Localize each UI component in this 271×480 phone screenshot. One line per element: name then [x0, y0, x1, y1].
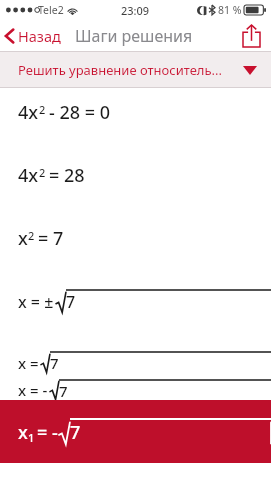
staticText: x = - [18, 380, 48, 400]
staticText: x = [18, 353, 39, 373]
staticText: 7 [59, 381, 68, 400]
staticText: 7 [70, 420, 81, 445]
staticText: x [18, 226, 28, 251]
staticText: = 7 [38, 226, 64, 251]
staticText: Решить уравнение относитель... [18, 61, 222, 79]
staticText: 4x [18, 100, 39, 125]
staticText: Назад [18, 26, 61, 46]
staticText: Шаги решения [75, 25, 193, 47]
staticText: 2 [39, 165, 46, 180]
button[interactable]: Решить уравнение относитель... [0, 52, 271, 88]
staticText: 23:09 [121, 3, 150, 18]
staticText: - 28 = 0 [49, 100, 111, 125]
staticText: x [18, 420, 28, 445]
staticText: 4x [18, 163, 39, 188]
staticText: = 28 [49, 163, 85, 188]
staticText: x = ± [18, 291, 54, 313]
button[interactable]: Назад [0, 22, 67, 50]
staticText: 2 [28, 228, 35, 243]
staticText: 81 % [218, 3, 242, 17]
staticText: Tele2 [38, 3, 64, 17]
staticText: 2 [39, 102, 46, 117]
staticText: 7 [50, 353, 59, 373]
staticText: = - [37, 420, 58, 445]
staticText: 7 [66, 291, 76, 313]
button[interactable]: Поделиться [237, 22, 265, 50]
staticText: 1 [28, 430, 35, 445]
